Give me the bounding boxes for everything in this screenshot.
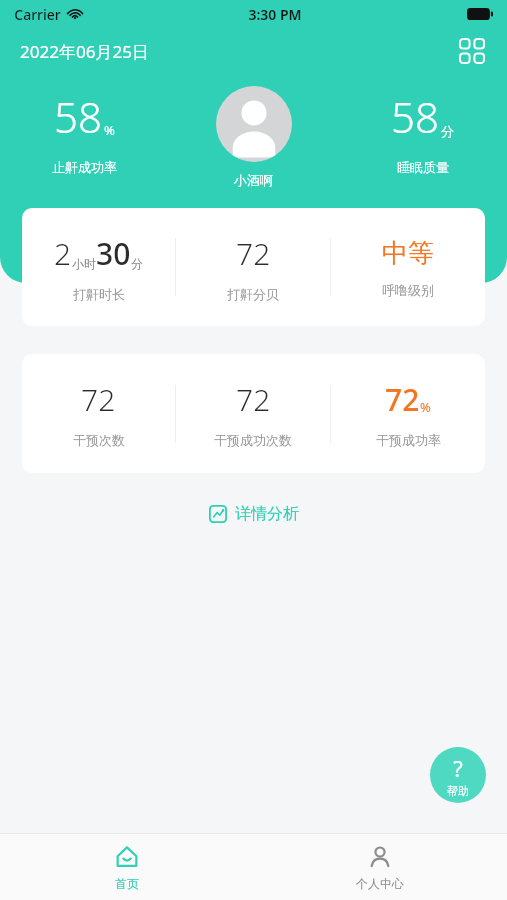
staticText: 分 bbox=[131, 256, 143, 271]
staticText: 72 bbox=[81, 379, 116, 420]
button[interactable]: 72 bbox=[22, 354, 485, 473]
staticText: 72 bbox=[385, 379, 420, 420]
staticText: % bbox=[104, 121, 115, 139]
button[interactable] bbox=[216, 86, 292, 162]
staticText: 小酒啊 bbox=[234, 172, 273, 188]
button[interactable]: 帮助 bbox=[430, 747, 486, 803]
staticText: Carrier bbox=[14, 5, 61, 24]
staticText: 3:30 PM bbox=[248, 5, 302, 24]
staticText: 详情分析 bbox=[235, 504, 299, 524]
staticText: 小时 bbox=[72, 256, 96, 271]
staticText: 打鼾分贝 bbox=[227, 286, 279, 302]
staticText: 分 bbox=[441, 123, 454, 139]
staticText: 中等 bbox=[382, 237, 434, 270]
staticText: 30 bbox=[96, 233, 131, 274]
staticText: % bbox=[420, 398, 431, 416]
staticText: 首页 bbox=[115, 876, 139, 891]
button[interactable]: 58 bbox=[0, 82, 169, 175]
staticText: 72 bbox=[236, 233, 271, 274]
staticText: 睡眠质量 bbox=[397, 159, 449, 175]
staticText: 呼噜级别 bbox=[382, 282, 434, 298]
staticText: 58 bbox=[54, 88, 102, 145]
staticText: 帮助 bbox=[447, 784, 469, 798]
button[interactable]: 2 bbox=[22, 208, 485, 326]
staticText: 58 bbox=[391, 88, 439, 145]
staticText: 止鼾成功率 bbox=[52, 159, 117, 175]
staticText: 打鼾时长 bbox=[73, 286, 125, 302]
staticText: 干预成功次数 bbox=[214, 432, 292, 448]
button[interactable]: Menu bbox=[455, 34, 489, 68]
staticText: 干预成功率 bbox=[376, 432, 441, 448]
staticText: 2022年06月25日 bbox=[20, 40, 149, 63]
staticText: 个人中心 bbox=[356, 876, 404, 891]
button[interactable]: 个人中心 bbox=[253, 834, 507, 900]
staticText: 2 bbox=[54, 233, 72, 274]
button[interactable]: 详情分析 bbox=[199, 498, 309, 530]
staticText: ? bbox=[453, 753, 463, 783]
button[interactable]: 58 bbox=[338, 82, 507, 175]
button[interactable]: 首页 bbox=[0, 834, 253, 900]
staticText: 72 bbox=[236, 379, 271, 420]
staticText: 干预次数 bbox=[73, 432, 125, 448]
